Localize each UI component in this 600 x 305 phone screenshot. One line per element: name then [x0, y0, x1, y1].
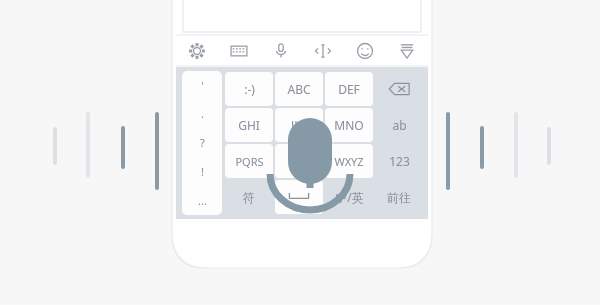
button[interactable]: Keyboard: [218, 36, 260, 66]
button[interactable]: 符: [225, 180, 273, 214]
button[interactable]: :-): [225, 72, 273, 106]
button[interactable]: Voice input: [260, 36, 302, 66]
button[interactable]: Space: [275, 180, 323, 214]
staticText: ?: [200, 135, 205, 150]
button[interactable]: 中/英: [325, 180, 373, 214]
button[interactable]: .: [182, 99, 222, 128]
staticText: GHI: [238, 117, 260, 133]
button[interactable]: Emoji: [344, 36, 386, 66]
staticText: ab: [392, 117, 407, 133]
button[interactable]: ab: [375, 108, 423, 142]
button[interactable]: PQRS: [225, 144, 273, 178]
staticText: DEF: [338, 81, 360, 97]
button[interactable]: 123: [375, 144, 423, 178]
button[interactable]: Settings: [176, 36, 218, 66]
staticText: :-): [244, 81, 255, 97]
staticText: ': [201, 78, 204, 93]
staticText: 中/英: [335, 189, 364, 205]
button[interactable]: ...: [182, 186, 222, 215]
button[interactable]: Hide keyboard: [386, 36, 428, 66]
button[interactable]: WXYZ: [325, 144, 373, 178]
staticText: PQRS: [235, 154, 264, 169]
staticText: 符: [243, 190, 255, 205]
button[interactable]: GHI: [225, 108, 273, 142]
button[interactable]: MNO: [325, 108, 373, 142]
button[interactable]: 前往: [375, 180, 423, 214]
staticText: .: [201, 106, 204, 121]
button[interactable]: JKL: [275, 108, 323, 142]
staticText: 123: [389, 153, 410, 169]
button[interactable]: !: [182, 157, 222, 186]
button[interactable]: TUV: [275, 144, 323, 178]
staticText: ...: [198, 193, 207, 208]
staticText: ABC: [287, 81, 311, 97]
button[interactable]: ?: [182, 128, 222, 157]
staticText: WXYZ: [334, 154, 364, 169]
staticText: JKL: [291, 117, 308, 133]
staticText: TUV: [288, 153, 311, 169]
button[interactable]: Backspace: [375, 72, 423, 106]
button[interactable]: DEF: [325, 72, 373, 106]
staticText: !: [201, 164, 204, 179]
staticText: 前往: [387, 190, 411, 205]
button[interactable]: Cursor: [302, 36, 344, 66]
button[interactable]: ABC: [275, 72, 323, 106]
button[interactable]: ': [182, 71, 222, 99]
staticText: MNO: [334, 117, 364, 133]
